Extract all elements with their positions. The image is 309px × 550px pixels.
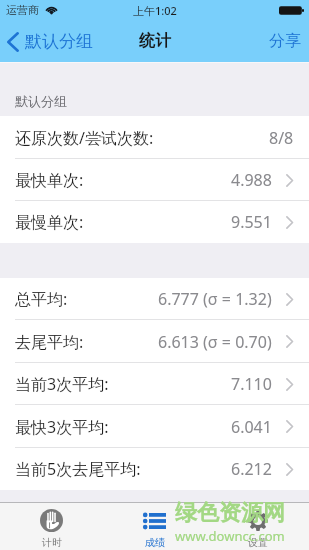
staticText: 默认分组	[25, 31, 93, 52]
staticText: 6.613 (σ = 0.70)	[158, 331, 272, 353]
button[interactable]: 默认分组	[0, 27, 99, 56]
staticText: 成绩	[145, 536, 165, 549]
staticText: 最快3次平均:	[15, 416, 109, 438]
staticText: 6.041	[231, 416, 272, 438]
other: Timer	[0, 509, 103, 532]
other: Settings	[206, 509, 309, 532]
staticText: 总平均:	[15, 288, 68, 310]
staticText: 计时	[42, 536, 62, 549]
staticText: 运营商	[6, 3, 39, 17]
staticText: 当前5次去尾平均:	[15, 458, 141, 480]
staticText: 默认分组	[15, 93, 67, 109]
other: Results	[103, 509, 206, 532]
button[interactable]: 当前3次平均:	[0, 363, 309, 405]
button[interactable]: Timer	[0, 503, 103, 550]
button[interactable]: 总平均:	[0, 278, 309, 320]
staticText: 绿色资源网	[175, 499, 285, 527]
button[interactable]: 最慢单次:	[0, 201, 309, 243]
staticText: 去尾平均:	[15, 331, 84, 353]
staticText: 最快单次:	[15, 169, 84, 191]
staticText: 7.110	[231, 373, 272, 395]
button[interactable]: 最快单次:	[0, 159, 309, 201]
staticText: 最慢单次:	[15, 211, 84, 233]
staticText: 分享	[269, 31, 301, 51]
staticText: 设置	[248, 536, 268, 549]
staticText: 9.551	[231, 211, 272, 233]
staticText: 上午1:02	[133, 3, 177, 18]
button[interactable]: 去尾平均:	[0, 320, 309, 363]
button[interactable]: Results	[103, 503, 206, 550]
button[interactable]: 还原次数/尝试次数:	[0, 116, 309, 159]
button[interactable]: 当前5次去尾平均:	[0, 448, 309, 490]
staticText: 还原次数/尝试次数:	[15, 127, 154, 149]
staticText: 6.777 (σ = 1.32)	[158, 288, 272, 310]
staticText: 统计	[139, 31, 171, 51]
staticText: 4.988	[231, 169, 272, 191]
button[interactable]: Settings	[206, 503, 309, 550]
button[interactable]: 最快3次平均:	[0, 405, 309, 448]
staticText: www.downcc.com	[175, 527, 285, 545]
button[interactable]: 分享	[257, 25, 309, 57]
staticText: 6.212	[231, 458, 272, 480]
staticText: 8/8	[269, 127, 294, 149]
staticText: 当前3次平均:	[15, 373, 109, 395]
